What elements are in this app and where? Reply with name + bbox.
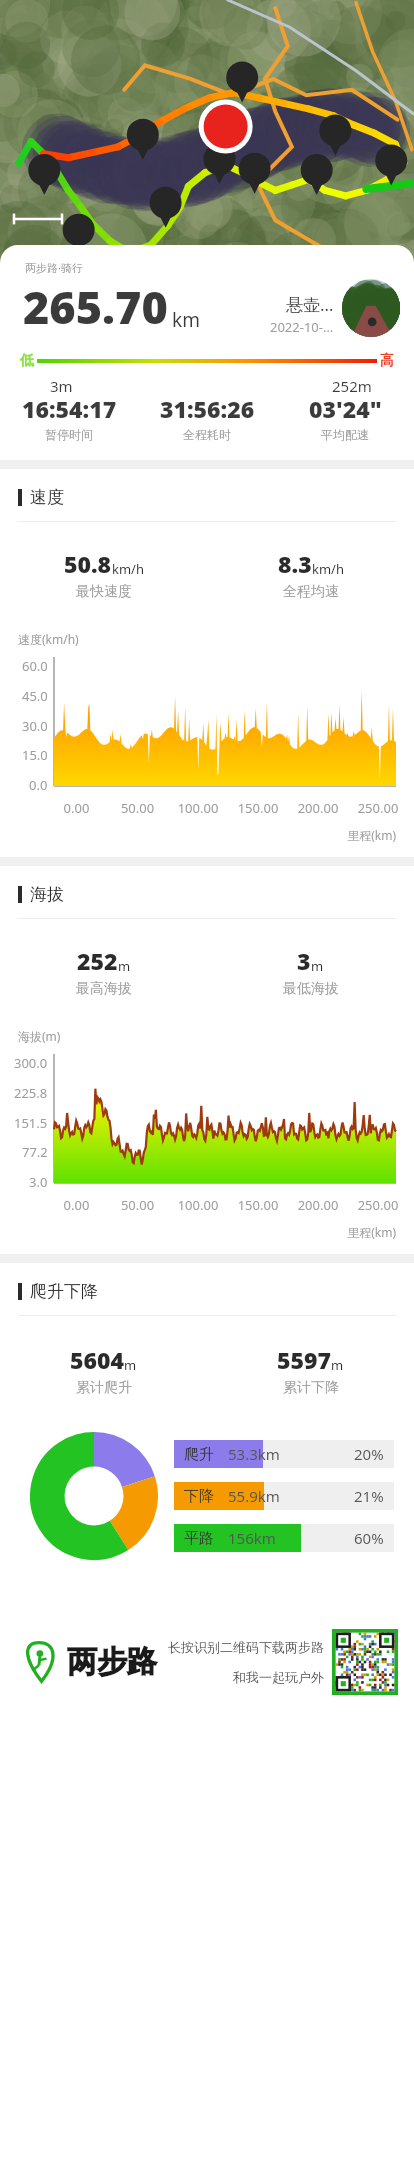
staticText: 两步路·骑行 — [25, 260, 83, 275]
staticText: 海拔(m) — [18, 1028, 61, 1044]
staticText: 爬升 — [184, 1445, 214, 1464]
staticText: 和我一起玩户外 — [233, 1669, 324, 1685]
staticText: 3.0 — [29, 1173, 48, 1191]
other: Logo — [18, 1641, 60, 1683]
staticText: 200.00 — [288, 799, 348, 817]
staticText: 3 — [297, 945, 311, 976]
staticText: 03'24" — [309, 393, 382, 424]
staticText: 0.0 — [29, 776, 48, 794]
staticText: 全程均速 — [283, 583, 339, 601]
staticText: 156km — [228, 1528, 276, 1548]
staticText: 海拔 — [30, 884, 64, 905]
staticText: 爬升下降 — [30, 1281, 98, 1302]
staticText: 悬壶… — [286, 293, 334, 316]
staticText: 150.00 — [228, 1196, 288, 1214]
staticText: m — [124, 1356, 137, 1374]
staticText: 速度 — [30, 487, 64, 508]
staticText: 暂停时间 — [45, 427, 93, 442]
button[interactable]: 下降 — [174, 1482, 394, 1510]
staticText: 最快速度 — [76, 583, 132, 601]
staticText: 45.0 — [22, 687, 48, 705]
staticText: 60% — [354, 1528, 384, 1548]
staticText: 53.3km — [228, 1444, 280, 1464]
staticText: 0.00 — [46, 799, 107, 817]
staticText: 150.00 — [228, 799, 288, 817]
staticText: 151.5 — [14, 1114, 48, 1132]
staticText: 平均配速 — [321, 427, 369, 442]
staticText: 里程(km) — [0, 827, 396, 843]
staticText: 20% — [354, 1444, 384, 1464]
staticText: m — [331, 1356, 344, 1374]
staticText: 300.0 — [14, 1054, 48, 1072]
staticText: 最低海拔 — [283, 980, 339, 998]
staticText: 全程耗时 — [183, 427, 231, 442]
staticText: 15.0 — [22, 746, 48, 764]
staticText: 8.3 — [278, 548, 312, 579]
staticText: 252m — [332, 376, 372, 393]
staticText: 50.8 — [64, 548, 112, 579]
staticText: 250.00 — [348, 799, 408, 817]
staticText: 下降 — [184, 1487, 214, 1506]
staticText: 速度(km/h) — [18, 631, 79, 647]
staticText: 77.2 — [22, 1143, 48, 1161]
staticText: 252 — [77, 945, 118, 976]
staticText: 250.00 — [348, 1196, 408, 1214]
staticText: 265.70 — [23, 276, 168, 337]
staticText: km/h — [312, 560, 344, 578]
staticText: 里程(km) — [0, 1224, 396, 1240]
button[interactable]: User avatar — [342, 279, 400, 337]
staticText: 3m — [50, 376, 73, 393]
staticText: 平路 — [184, 1529, 214, 1548]
staticText: 高 — [380, 352, 394, 370]
staticText: 5597 — [277, 1344, 331, 1375]
staticText: 最高海拔 — [76, 980, 132, 998]
staticText: 50.00 — [107, 1196, 168, 1214]
staticText: 50.00 — [107, 799, 168, 817]
staticText: 30.0 — [22, 717, 48, 735]
staticText: 31:56:26 — [160, 393, 255, 424]
staticText: 0.00 — [46, 1196, 107, 1214]
button[interactable]: 爬升 — [174, 1440, 394, 1468]
button[interactable]: 平路 — [174, 1524, 394, 1552]
staticText: 低 — [20, 352, 34, 370]
staticText: 60.0 — [22, 657, 48, 675]
staticText: 21% — [354, 1486, 384, 1506]
staticText: 累计下降 — [283, 1379, 339, 1397]
staticText: 累计爬升 — [76, 1379, 132, 1397]
staticText: 200.00 — [288, 1196, 348, 1214]
staticText: 225.8 — [14, 1084, 48, 1102]
staticText: km — [172, 307, 200, 333]
staticText: 两步路 — [67, 1643, 157, 1681]
staticText: 100.00 — [168, 799, 228, 817]
button[interactable]: QR code — [332, 1629, 398, 1695]
staticText: 100.00 — [168, 1196, 228, 1214]
staticText: km/h — [112, 560, 144, 578]
staticText: 5604 — [70, 1344, 124, 1375]
staticText: 长按识别二维码下载两步路 — [168, 1639, 324, 1655]
staticText: m — [311, 957, 324, 975]
staticText: 55.9km — [228, 1486, 280, 1506]
staticText: 2022-10-… — [270, 318, 334, 336]
staticText: 16:54:17 — [22, 393, 117, 424]
staticText: m — [118, 957, 131, 975]
